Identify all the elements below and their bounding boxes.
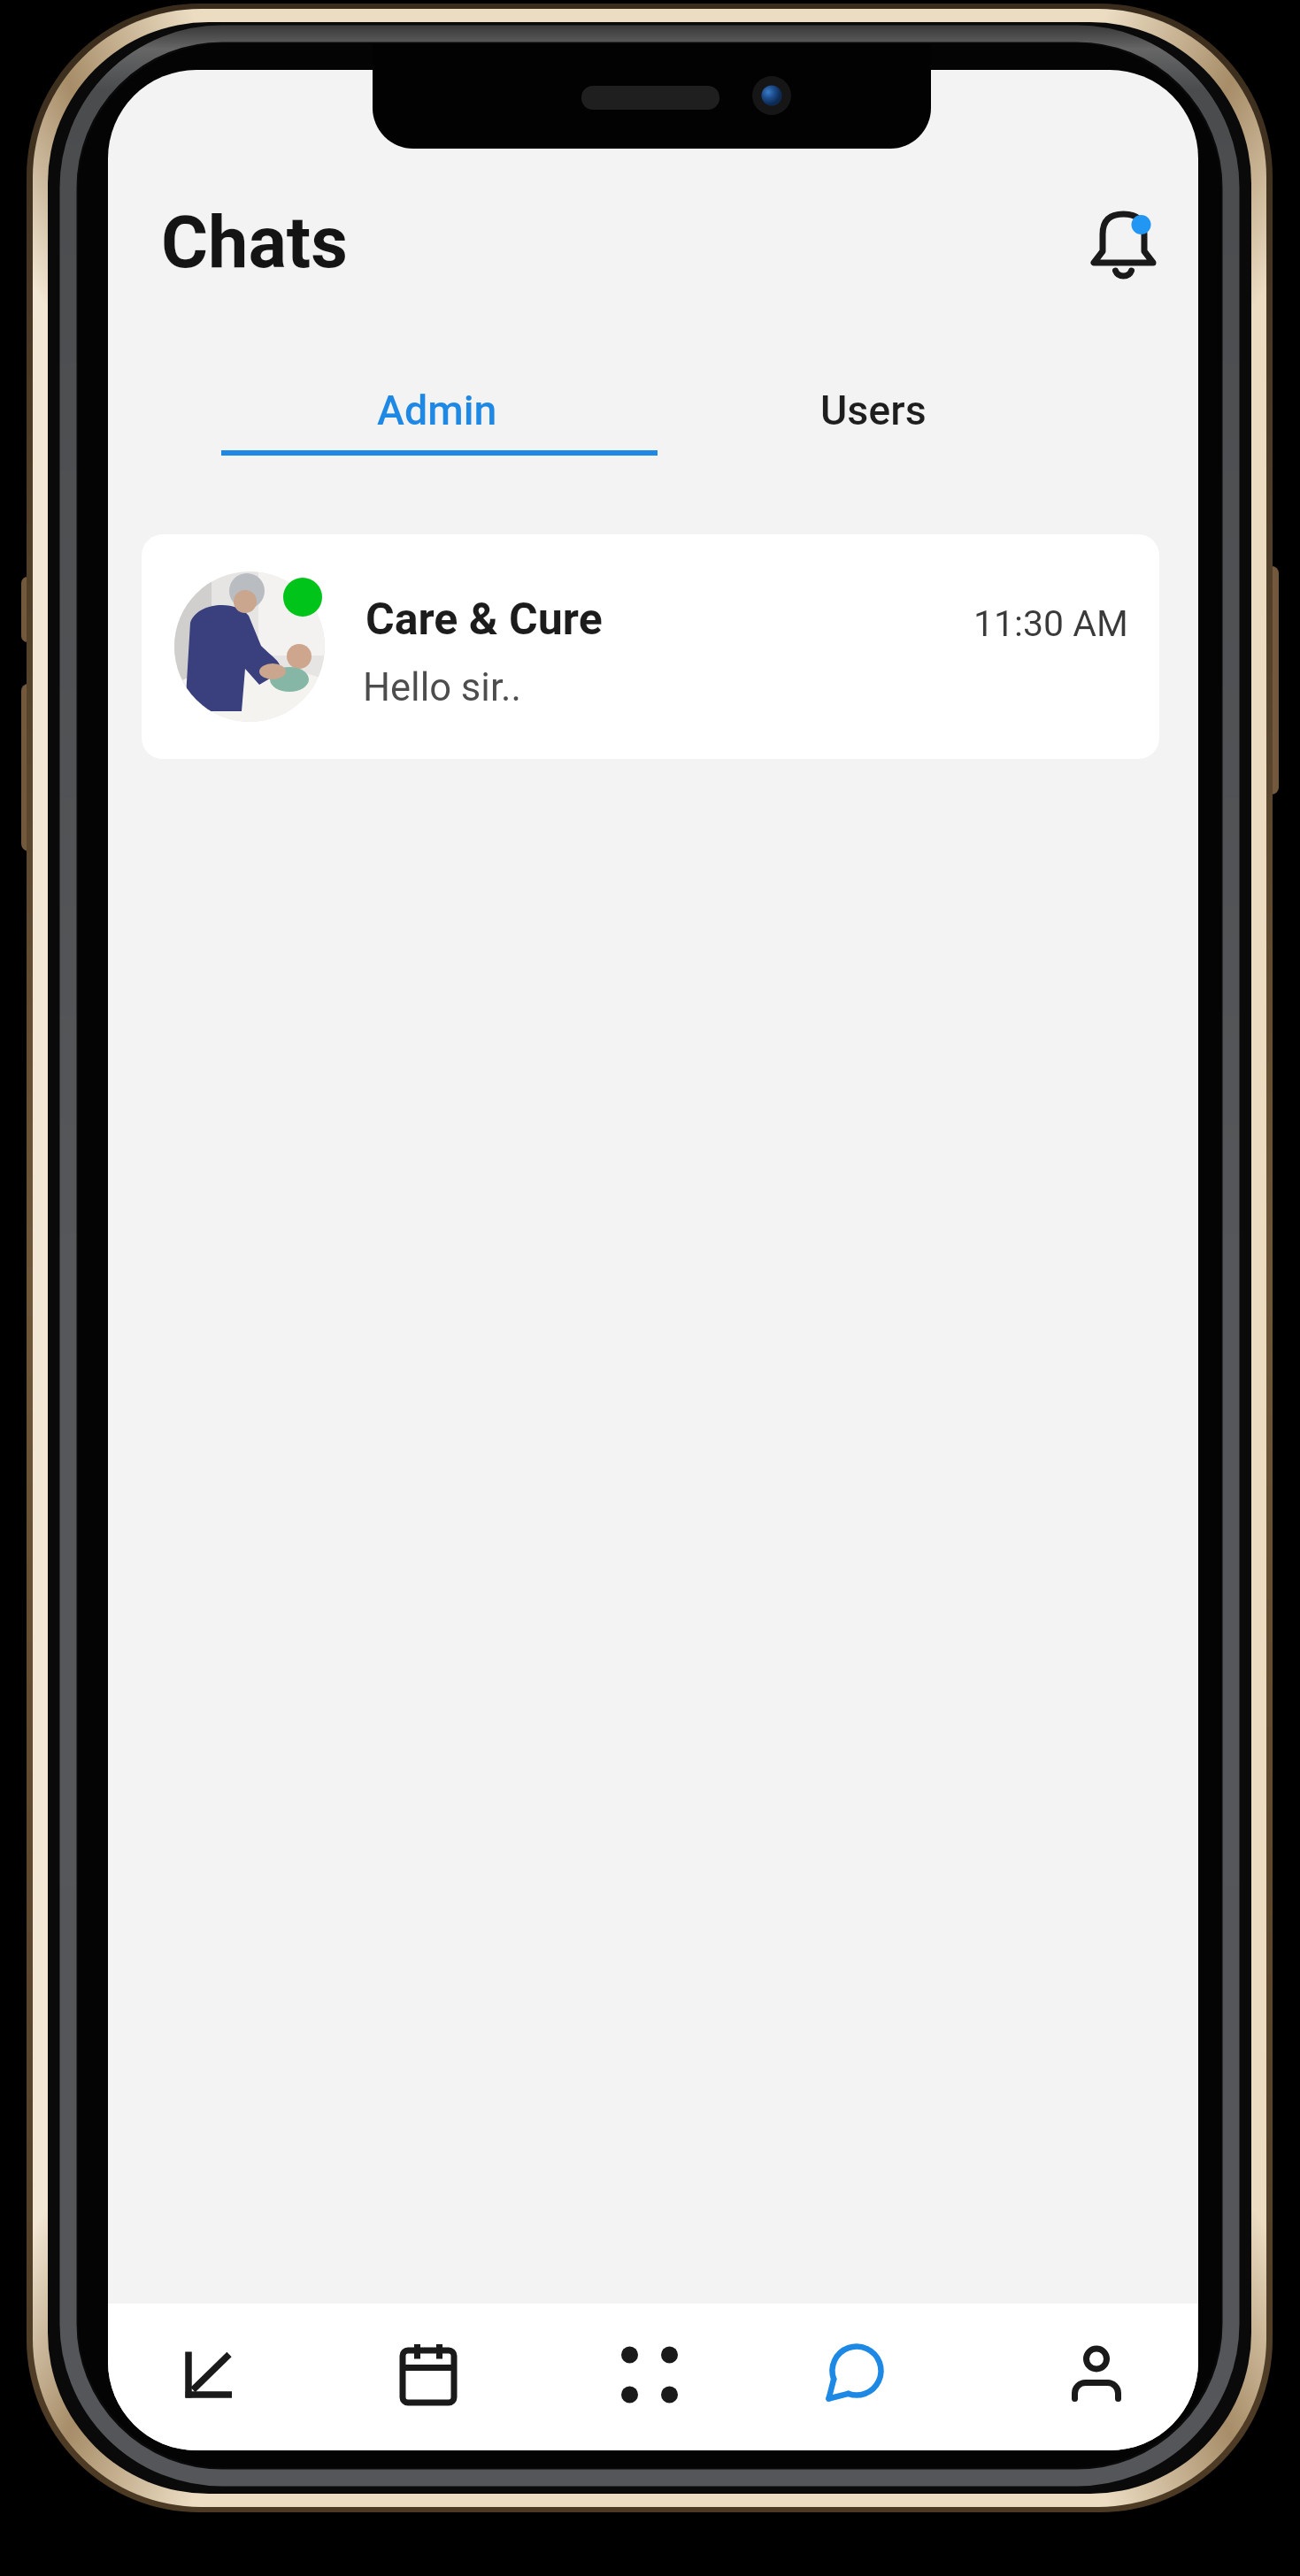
button[interactable] bbox=[108, 2304, 326, 2450]
button[interactable] bbox=[544, 2304, 762, 2450]
staticText: 11:30 AM bbox=[973, 602, 1128, 645]
button[interactable]: Care & Cure bbox=[142, 534, 1159, 759]
button[interactable] bbox=[1073, 185, 1179, 295]
button[interactable] bbox=[326, 2304, 543, 2450]
staticText: Chats bbox=[161, 201, 348, 285]
button[interactable]: Admin bbox=[219, 362, 655, 459]
staticText: Users bbox=[820, 387, 927, 434]
staticText: Hello sir.. bbox=[363, 665, 521, 710]
staticText: Admin bbox=[377, 387, 497, 434]
button[interactable] bbox=[762, 2304, 980, 2450]
staticText: Care & Cure bbox=[365, 594, 603, 646]
button[interactable]: Users bbox=[655, 362, 1091, 459]
button[interactable] bbox=[981, 2304, 1198, 2450]
